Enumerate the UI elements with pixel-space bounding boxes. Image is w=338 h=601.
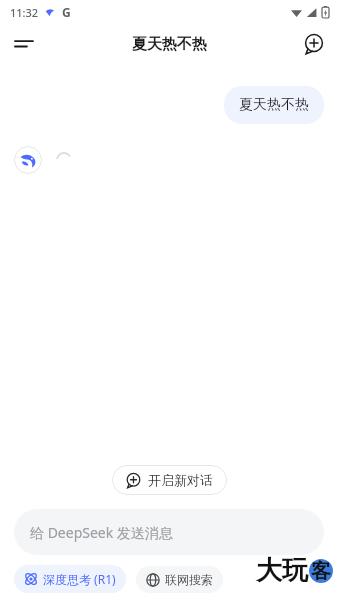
button[interactable]: 给 DeepSeek 发送消息: [14, 509, 324, 555]
staticText: 11:32: [10, 5, 39, 20]
button[interactable]: 夏天热不热: [224, 86, 324, 124]
button[interactable]: New chat: [296, 26, 332, 62]
button[interactable]: 联网搜索: [136, 566, 223, 593]
button[interactable]: Menu: [6, 26, 42, 62]
staticText: 开启新对话: [148, 472, 213, 488]
button[interactable]: 开启新对话: [112, 465, 227, 495]
staticText: 深度思考 (R1): [43, 571, 116, 587]
button[interactable]: 深度思考 (R1): [14, 565, 126, 593]
staticText: 夏天热不热: [239, 96, 309, 114]
staticText: 夏天热不热: [132, 35, 207, 54]
staticText: 大玩: [256, 554, 308, 587]
staticText: 客: [311, 559, 331, 584]
staticText: 给 DeepSeek 发送消息: [30, 523, 173, 542]
button[interactable]: DeepSeek: [14, 146, 42, 174]
staticText: 联网搜索: [165, 572, 213, 587]
staticText: G: [62, 4, 71, 20]
